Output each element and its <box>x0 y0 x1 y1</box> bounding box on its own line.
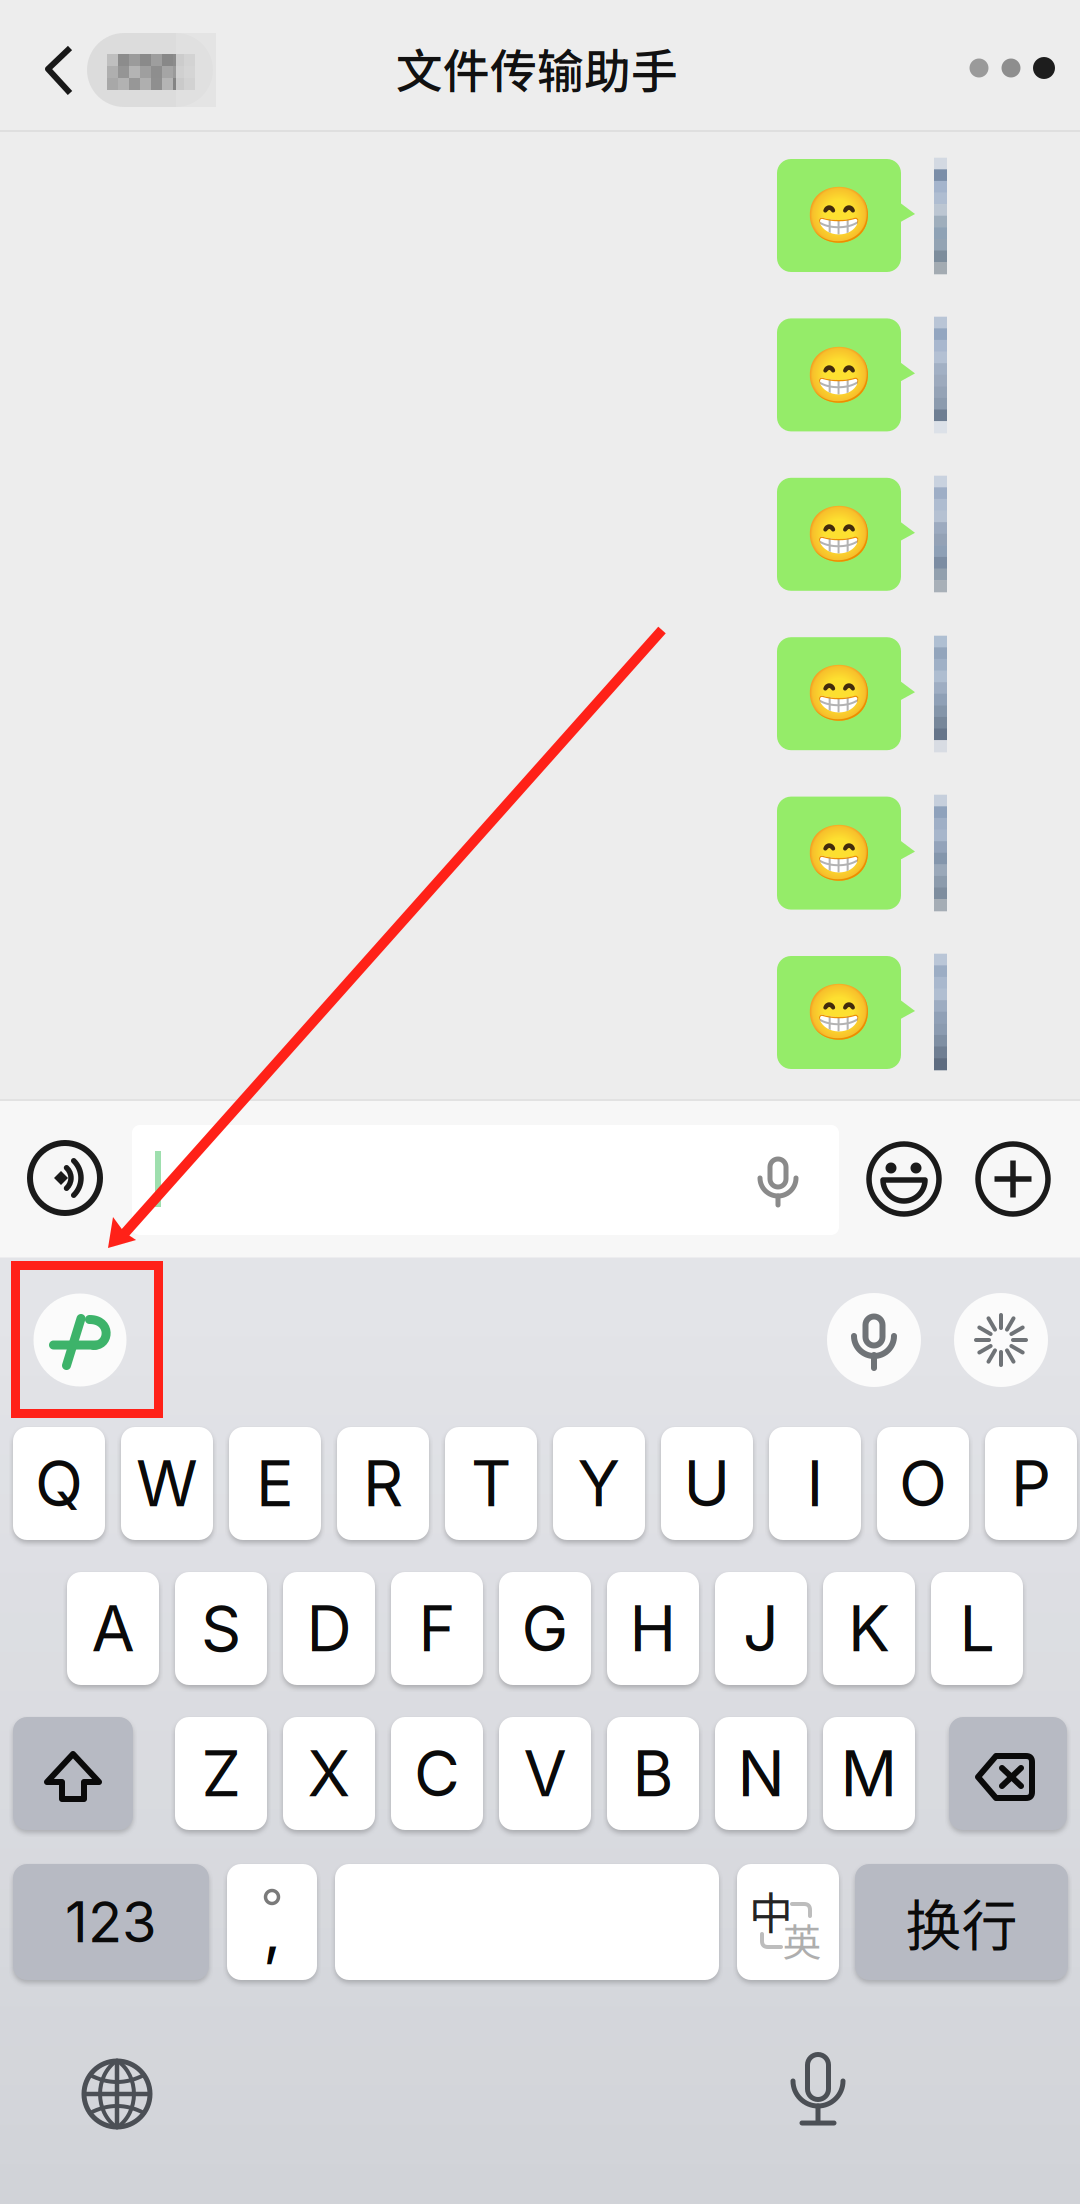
button[interactable]: Keyboard app <box>33 1293 126 1386</box>
button[interactable]: More actions <box>968 1134 1058 1224</box>
button[interactable]: U <box>661 1427 753 1540</box>
button[interactable]: I <box>769 1427 861 1540</box>
button[interactable]: S <box>175 1572 267 1685</box>
staticText: 😁 <box>805 662 873 725</box>
staticText: S <box>201 1591 241 1666</box>
button[interactable]: Message <box>132 1125 839 1235</box>
button[interactable]: Comma <box>227 1864 317 1980</box>
button[interactable]: B <box>607 1717 699 1830</box>
button[interactable]: F <box>391 1572 483 1685</box>
button[interactable]: W <box>121 1427 213 1540</box>
button[interactable]: J <box>715 1572 807 1685</box>
button[interactable]: More <box>956 32 1068 104</box>
staticText: R <box>363 1446 403 1521</box>
staticText: P <box>1011 1446 1051 1521</box>
button[interactable]: Return <box>855 1864 1068 1980</box>
button[interactable]: Z <box>175 1717 267 1830</box>
button[interactable]: T <box>445 1427 537 1540</box>
staticText: B <box>632 1736 673 1811</box>
staticText: V <box>523 1736 566 1811</box>
staticText: I <box>806 1446 823 1521</box>
staticText: G <box>521 1591 568 1666</box>
staticText: Y <box>577 1446 620 1521</box>
staticText: T <box>471 1446 511 1521</box>
button[interactable]: Voice input <box>20 1133 110 1223</box>
staticText: 123 <box>65 1888 157 1956</box>
staticText: 中 <box>749 1878 793 1942</box>
button[interactable]: Switch keyboard <box>62 2039 172 2149</box>
button[interactable]: Y <box>553 1427 645 1540</box>
staticText: 😁 <box>805 981 873 1044</box>
button[interactable]: E <box>229 1427 321 1540</box>
staticText: 😁 <box>805 503 873 566</box>
staticText: 文件传输助手 <box>396 34 678 102</box>
staticText: 换行 <box>905 1881 1017 1963</box>
staticText: W <box>136 1446 198 1521</box>
button[interactable]: Q <box>13 1427 105 1540</box>
staticText: , <box>263 1891 281 1969</box>
staticText: 😁 <box>805 184 873 247</box>
button[interactable]: Loading <box>954 1293 1048 1387</box>
button[interactable]: P <box>985 1427 1077 1540</box>
staticText: Q <box>35 1446 83 1521</box>
button[interactable]: X <box>283 1717 375 1830</box>
button[interactable]: A <box>67 1572 159 1685</box>
staticText: H <box>629 1591 676 1666</box>
button[interactable]: C <box>391 1717 483 1830</box>
staticText: K <box>848 1591 890 1666</box>
staticText: U <box>683 1446 730 1521</box>
button[interactable]: D <box>283 1572 375 1685</box>
button[interactable]: M <box>823 1717 915 1830</box>
button[interactable]: K <box>823 1572 915 1685</box>
staticText: N <box>737 1736 784 1811</box>
button[interactable]: N <box>715 1717 807 1830</box>
button[interactable]: Numbers <box>13 1864 209 1980</box>
staticText: 英 <box>782 1912 821 1968</box>
button[interactable]: G <box>499 1572 591 1685</box>
button[interactable]: Dictation <box>758 2045 878 2165</box>
button[interactable]: Delete <box>949 1717 1067 1830</box>
staticText: 😁 <box>805 344 873 406</box>
button[interactable]: L <box>931 1572 1023 1685</box>
button[interactable]: H <box>607 1572 699 1685</box>
staticText: L <box>959 1591 994 1666</box>
staticText: F <box>418 1591 455 1666</box>
button[interactable]: Emoji <box>859 1134 949 1224</box>
staticText: O <box>899 1446 947 1521</box>
staticText: J <box>743 1591 779 1666</box>
staticText: D <box>306 1591 351 1666</box>
button[interactable]: Chinese English <box>737 1864 839 1980</box>
button[interactable]: Shift <box>13 1717 133 1830</box>
staticText: E <box>256 1446 294 1521</box>
button[interactable]: V <box>499 1717 591 1830</box>
staticText: Z <box>201 1736 240 1811</box>
staticText: M <box>840 1736 897 1811</box>
staticText: A <box>91 1591 134 1666</box>
staticText: 😁 <box>805 822 873 884</box>
button[interactable]: R <box>337 1427 429 1540</box>
button[interactable]: Voice typing <box>827 1293 921 1387</box>
staticText: X <box>307 1736 350 1811</box>
button[interactable]: Space <box>335 1864 719 1980</box>
button[interactable]: Back <box>0 0 110 132</box>
button[interactable]: O <box>877 1427 969 1540</box>
staticText: C <box>414 1736 460 1811</box>
